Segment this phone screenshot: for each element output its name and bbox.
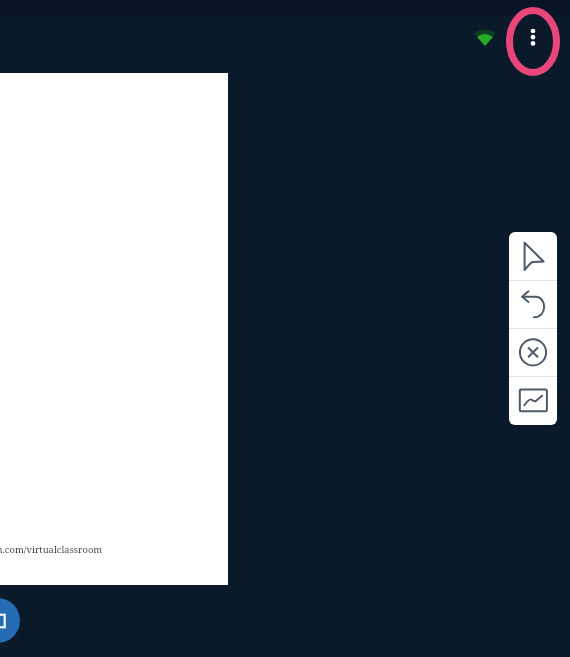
button[interactable]: New note — [0, 598, 20, 643]
button[interactable]: More options — [500, 0, 566, 84]
button[interactable]: Select tool — [509, 232, 557, 280]
button[interactable]: Clear — [509, 328, 557, 376]
button[interactable]: Undo — [509, 280, 557, 328]
button[interactable]: Insert chart — [509, 376, 557, 424]
staticText: https://www.lesson.com/virtualclassroom — [0, 543, 103, 556]
other: Wifi signal — [474, 28, 496, 46]
